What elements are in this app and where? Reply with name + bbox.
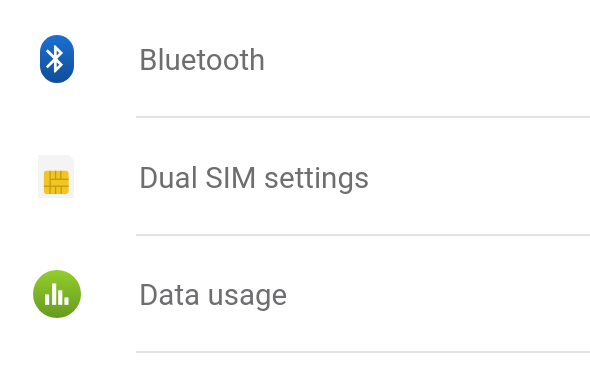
button[interactable]: Bluetooth <box>0 0 590 118</box>
button[interactable]: Data usage <box>0 235 590 353</box>
button[interactable]: Dual SIM settings <box>0 118 590 236</box>
other: Data usage <box>33 270 81 318</box>
staticText: Dual SIM settings <box>139 161 370 196</box>
other: Dual SIM settings <box>38 155 74 198</box>
other: Bluetooth <box>40 35 74 83</box>
staticText: Data usage <box>139 278 288 313</box>
staticText: Bluetooth <box>139 43 266 78</box>
